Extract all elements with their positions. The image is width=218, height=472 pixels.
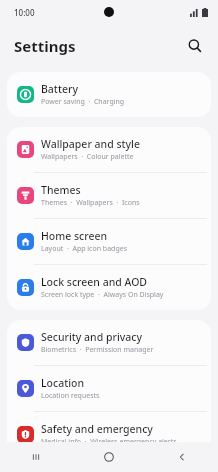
button[interactable]: Home	[72, 442, 145, 472]
staticText: Location requests	[41, 391, 100, 401]
button[interactable]: Safety and emergency	[7, 412, 211, 457]
staticText: Safety and emergency	[41, 422, 153, 436]
staticText: Layout · App icon badges	[41, 244, 128, 254]
staticText: Battery	[41, 82, 78, 96]
button[interactable]: Search	[180, 31, 210, 61]
staticText: Biometrics · Permission manager	[41, 345, 154, 355]
button[interactable]: Recent apps	[0, 442, 72, 472]
button[interactable]: Back	[145, 442, 218, 472]
staticText: 10:00	[14, 7, 35, 18]
staticText: Lock screen and AOD	[41, 275, 148, 289]
staticText: Medical info · Wireless emergency alerts	[41, 437, 177, 447]
staticText: Wallpapers · Colour palette	[41, 152, 134, 162]
button[interactable]: Wallpaper and style	[7, 127, 211, 172]
button[interactable]: Security and privacy	[7, 320, 211, 365]
staticText: Screen lock type · Always On Display	[41, 290, 164, 300]
staticText: Home screen	[41, 229, 108, 243]
staticText: Settings	[14, 36, 76, 56]
staticText: Power saving · Charging	[41, 97, 125, 107]
staticText: Security and privacy	[41, 330, 142, 344]
button[interactable]: Home screen	[7, 219, 211, 264]
staticText: Location	[41, 376, 85, 390]
button[interactable]: Battery	[7, 72, 211, 117]
staticText: Wallpaper and style	[41, 137, 140, 151]
button[interactable]: Location	[7, 366, 211, 411]
button[interactable]: Lock screen and AOD	[7, 265, 211, 310]
staticText: Themes · Wallpapers · Icons	[41, 198, 140, 208]
staticText: Themes	[41, 183, 81, 197]
button[interactable]: Themes	[7, 173, 211, 218]
